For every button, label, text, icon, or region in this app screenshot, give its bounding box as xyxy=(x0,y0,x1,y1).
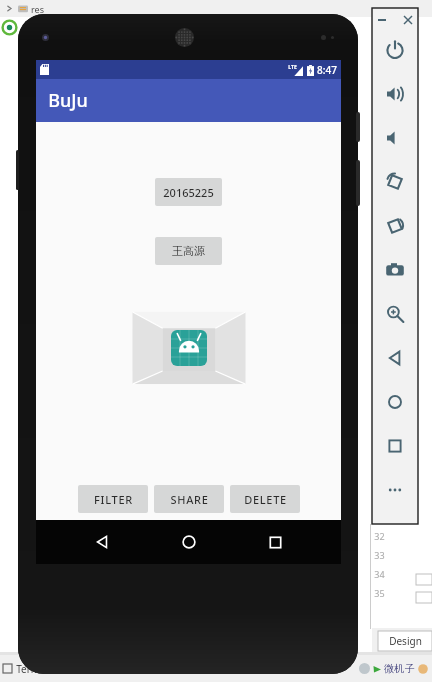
button[interactable]: Home xyxy=(169,522,209,562)
staticText: Termi xyxy=(16,662,43,676)
button[interactable]: Power xyxy=(373,28,417,72)
button[interactable]: Recent apps xyxy=(255,522,295,562)
button[interactable]: Volume up xyxy=(373,72,417,116)
staticText: 子 xyxy=(405,662,415,675)
button[interactable]: DELETE xyxy=(230,485,300,513)
staticText: 34 xyxy=(374,568,385,580)
button[interactable]: Rotate right xyxy=(373,204,417,248)
button[interactable]: Minimise xyxy=(375,13,389,27)
button[interactable]: 20165225 xyxy=(155,178,222,206)
button[interactable]: FILTER xyxy=(78,485,148,513)
staticText: 33 xyxy=(374,549,385,561)
staticText: 8:47 xyxy=(317,63,337,77)
button[interactable]: Back xyxy=(82,522,122,562)
staticText: LTE xyxy=(288,64,297,71)
staticText: 王高源 xyxy=(172,244,205,258)
staticText: FILTER xyxy=(94,492,133,507)
button[interactable]: Close xyxy=(401,13,415,27)
staticText: 32 xyxy=(374,530,385,542)
button[interactable]: Design xyxy=(378,631,432,651)
staticText: res xyxy=(31,3,44,15)
staticText: 20165225 xyxy=(163,185,214,200)
button[interactable]: SHARE xyxy=(154,485,224,513)
button[interactable]: Screenshot xyxy=(373,248,417,292)
button[interactable]: More xyxy=(373,468,417,512)
staticText: 微机 xyxy=(384,662,404,675)
staticText: DELETE xyxy=(244,492,287,507)
button[interactable]: Back xyxy=(373,336,417,380)
button[interactable]: 王高源 xyxy=(155,237,222,265)
staticText: SHARE xyxy=(170,492,209,507)
staticText: BuJu xyxy=(48,88,88,113)
staticText: 35 xyxy=(374,587,385,599)
button[interactable]: Volume down xyxy=(373,116,417,160)
button[interactable]: Zoom xyxy=(373,292,417,336)
button[interactable]: Home xyxy=(373,380,417,424)
staticText: Design xyxy=(389,634,422,648)
button[interactable]: Rotate left xyxy=(373,160,417,204)
button[interactable]: Recent apps xyxy=(373,424,417,468)
